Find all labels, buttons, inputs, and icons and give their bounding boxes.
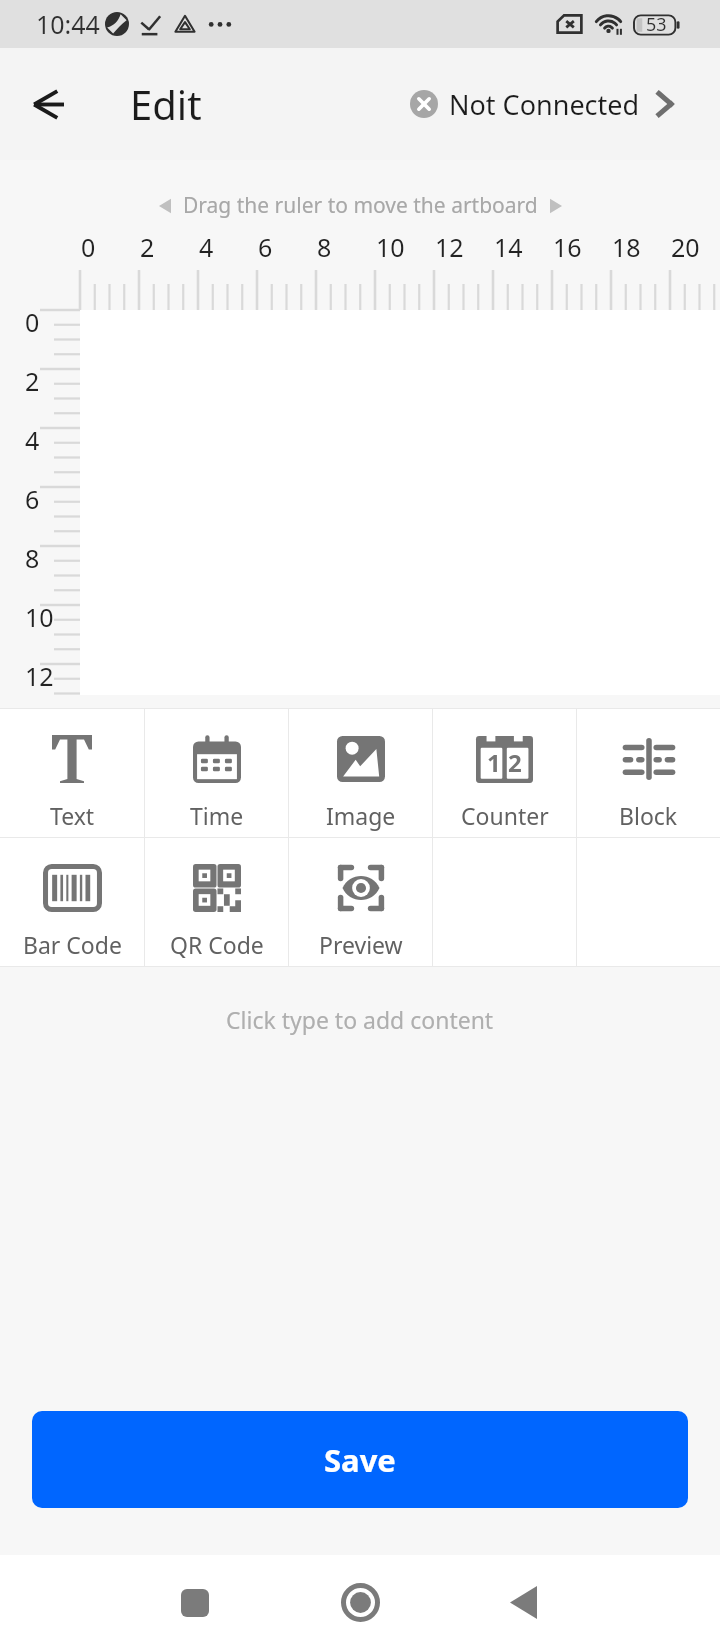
staticText: Time bbox=[190, 800, 244, 831]
staticText: Edit bbox=[130, 77, 202, 131]
staticText: Block bbox=[619, 800, 678, 831]
button[interactable]: Back bbox=[473, 1555, 573, 1650]
button[interactable]: Block bbox=[577, 709, 720, 837]
staticText: 1 bbox=[487, 746, 501, 779]
staticText: 18 bbox=[612, 230, 641, 264]
staticText: 6 bbox=[25, 482, 40, 516]
staticText: Preview bbox=[319, 929, 403, 960]
staticText: Counter bbox=[461, 800, 549, 831]
staticText: 2 bbox=[140, 230, 155, 264]
staticText: 12 bbox=[25, 659, 54, 693]
button[interactable]: QR Code bbox=[145, 838, 288, 966]
staticText: Text bbox=[50, 800, 95, 831]
staticText: Click type to add content bbox=[226, 1004, 494, 1035]
staticText: 0 bbox=[25, 305, 40, 339]
staticText: 2 bbox=[25, 364, 40, 398]
staticText: 6 bbox=[258, 230, 273, 264]
staticText: 12 bbox=[435, 230, 464, 264]
button[interactable]: Time bbox=[145, 709, 288, 837]
staticText: 8 bbox=[317, 230, 332, 264]
staticText: 8 bbox=[25, 541, 40, 575]
staticText: Save bbox=[324, 1439, 396, 1481]
button[interactable]: Back bbox=[0, 48, 96, 160]
staticText: 10 bbox=[376, 230, 405, 264]
button[interactable]: Image bbox=[289, 709, 432, 837]
staticText: 4 bbox=[199, 230, 214, 264]
staticText: 14 bbox=[494, 230, 523, 264]
button[interactable]: Home bbox=[310, 1555, 410, 1650]
staticText: 4 bbox=[25, 423, 40, 457]
staticText: Image bbox=[326, 800, 396, 831]
button[interactable]: 1 bbox=[433, 709, 576, 837]
staticText: 53 bbox=[646, 12, 667, 37]
staticText: Bar Code bbox=[23, 929, 122, 960]
staticText: 10 bbox=[25, 600, 54, 634]
button[interactable]: Text bbox=[0, 709, 144, 837]
staticText: 0 bbox=[81, 230, 96, 264]
button[interactable]: Bar Code bbox=[0, 838, 144, 966]
staticText: 10:44 bbox=[36, 7, 100, 41]
staticText: Not Connected bbox=[449, 86, 640, 123]
button[interactable]: Not Connected bbox=[410, 48, 720, 160]
staticText: 2 bbox=[508, 746, 522, 779]
staticText: 16 bbox=[553, 230, 582, 264]
button[interactable]: Recent apps bbox=[145, 1555, 245, 1650]
button[interactable]: Preview bbox=[289, 838, 432, 966]
staticText: Drag the ruler to move the artboard bbox=[183, 191, 538, 220]
staticText: 20 bbox=[671, 230, 700, 264]
button[interactable]: Save bbox=[32, 1411, 688, 1508]
staticText: QR Code bbox=[170, 929, 264, 960]
